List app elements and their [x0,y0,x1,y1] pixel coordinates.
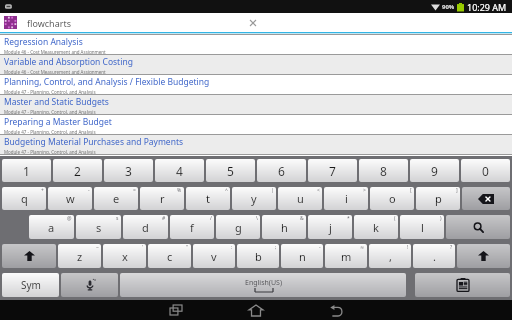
button[interactable]: l [400,215,444,239]
button[interactable]: k [354,215,398,239]
staticText: & [300,215,304,222]
staticText: 7 [329,163,336,179]
staticText: ? [450,244,453,251]
button[interactable]: w [48,187,92,210]
staticText: s [116,215,119,222]
staticText: + [41,187,44,194]
staticText: ( [394,215,396,222]
button[interactable]: Back [296,300,376,320]
staticText: 9 [431,163,438,179]
staticText: r [160,191,165,206]
staticText: ≈ [360,244,365,250]
button[interactable]: 3 [104,159,153,182]
staticText: . [433,249,436,264]
button[interactable]: c [148,244,191,268]
staticText: Module 47 - Planning, Control, and Analy… [4,89,96,94]
button[interactable]: 4 [155,159,204,182]
button[interactable]: Planning, Control, and Analysis / Flexib… [0,75,512,94]
button[interactable]: z [58,244,101,268]
staticText: ] [456,187,458,194]
button[interactable]: d [123,215,168,239]
button[interactable]: u [278,187,322,210]
button[interactable]: 6 [257,159,306,182]
button[interactable]: Sym [2,273,59,297]
button[interactable]: Recent apps [136,300,216,320]
staticText: 2 [74,163,81,179]
staticText: " [186,244,189,251]
staticText: d [142,220,149,235]
staticText: Module 47 - Planning, Control, and Analy… [4,149,96,154]
button[interactable]: e [94,187,138,210]
button[interactable]: 5 [206,159,255,182]
button[interactable]: Home [216,300,296,320]
button[interactable]: . [413,244,455,268]
staticText: ) [440,215,442,222]
button[interactable]: o [370,187,414,210]
staticText: * [347,215,350,222]
button[interactable]: Backspace [462,187,510,210]
button[interactable]: p [416,187,460,210]
button[interactable]: 2 [53,159,102,182]
button[interactable]: m [325,244,367,268]
button[interactable]: Budgeting Material Purchases and Payment… [0,135,512,154]
staticText: 6 [278,163,285,179]
staticText: l [421,220,424,235]
button[interactable]: r [140,187,184,210]
staticText: a [48,220,55,235]
button[interactable]: f [170,215,214,239]
staticText: z [77,249,83,264]
button[interactable]: Shift [2,244,56,268]
button[interactable]: Regression Analysis [0,35,512,54]
staticText: 3 [125,163,132,179]
staticText: < [317,187,320,194]
button[interactable]: 1 [2,159,51,182]
button[interactable]: 9 [410,159,459,182]
button[interactable]: t [186,187,230,210]
staticText: o [389,191,396,206]
staticText: b [255,249,262,264]
staticText: : [231,244,233,251]
button[interactable]: i [324,187,368,210]
button[interactable]: Shift [457,244,510,268]
button[interactable]: j [308,215,352,239]
button[interactable]: Voice input [61,273,118,297]
button[interactable]: Master and Static Budgets [0,95,512,114]
staticText: Regression Analysis [4,36,83,48]
button[interactable]: y [232,187,276,210]
staticText: c [167,249,173,264]
button[interactable]: 7 [308,159,357,182]
button[interactable]: Search [446,215,510,239]
staticText: m [341,249,352,264]
button[interactable]: Clear search [244,14,262,32]
staticText: @ [67,215,72,222]
button[interactable]: English(US) [120,273,406,297]
button[interactable]: App icon [0,13,512,32]
button[interactable]: h [262,215,306,239]
staticText: i [345,191,348,206]
staticText: ! [407,244,409,251]
button[interactable]: Preparing a Master Budget [0,115,512,134]
button[interactable]: a [29,215,74,239]
staticText: - [319,244,321,251]
staticText: f [190,220,194,235]
button[interactable]: q [2,187,46,210]
button[interactable]: g [216,215,260,239]
button[interactable]: x [103,244,146,268]
button[interactable]: , [369,244,411,268]
staticText: [ [410,187,412,194]
button[interactable]: b [237,244,279,268]
button[interactable]: Clipboard [415,273,510,297]
staticText: q [21,191,28,206]
button[interactable]: s [76,215,121,239]
staticText: Variable and Absorption Costing [4,56,133,68]
button[interactable]: n [281,244,323,268]
staticText: x [122,249,128,264]
staticText: s [96,220,102,235]
button[interactable]: 0 [461,159,510,182]
button[interactable]: Variable and Absorption Costing [0,55,512,74]
staticText: 10:29 AM [467,1,507,13]
staticText: > [363,187,366,194]
button[interactable]: 8 [359,159,408,182]
staticText: 0 [482,163,489,179]
button[interactable]: v [193,244,235,268]
